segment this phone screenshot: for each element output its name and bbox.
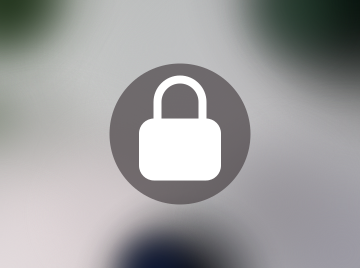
button[interactable]: Locked (109, 63, 250, 204)
